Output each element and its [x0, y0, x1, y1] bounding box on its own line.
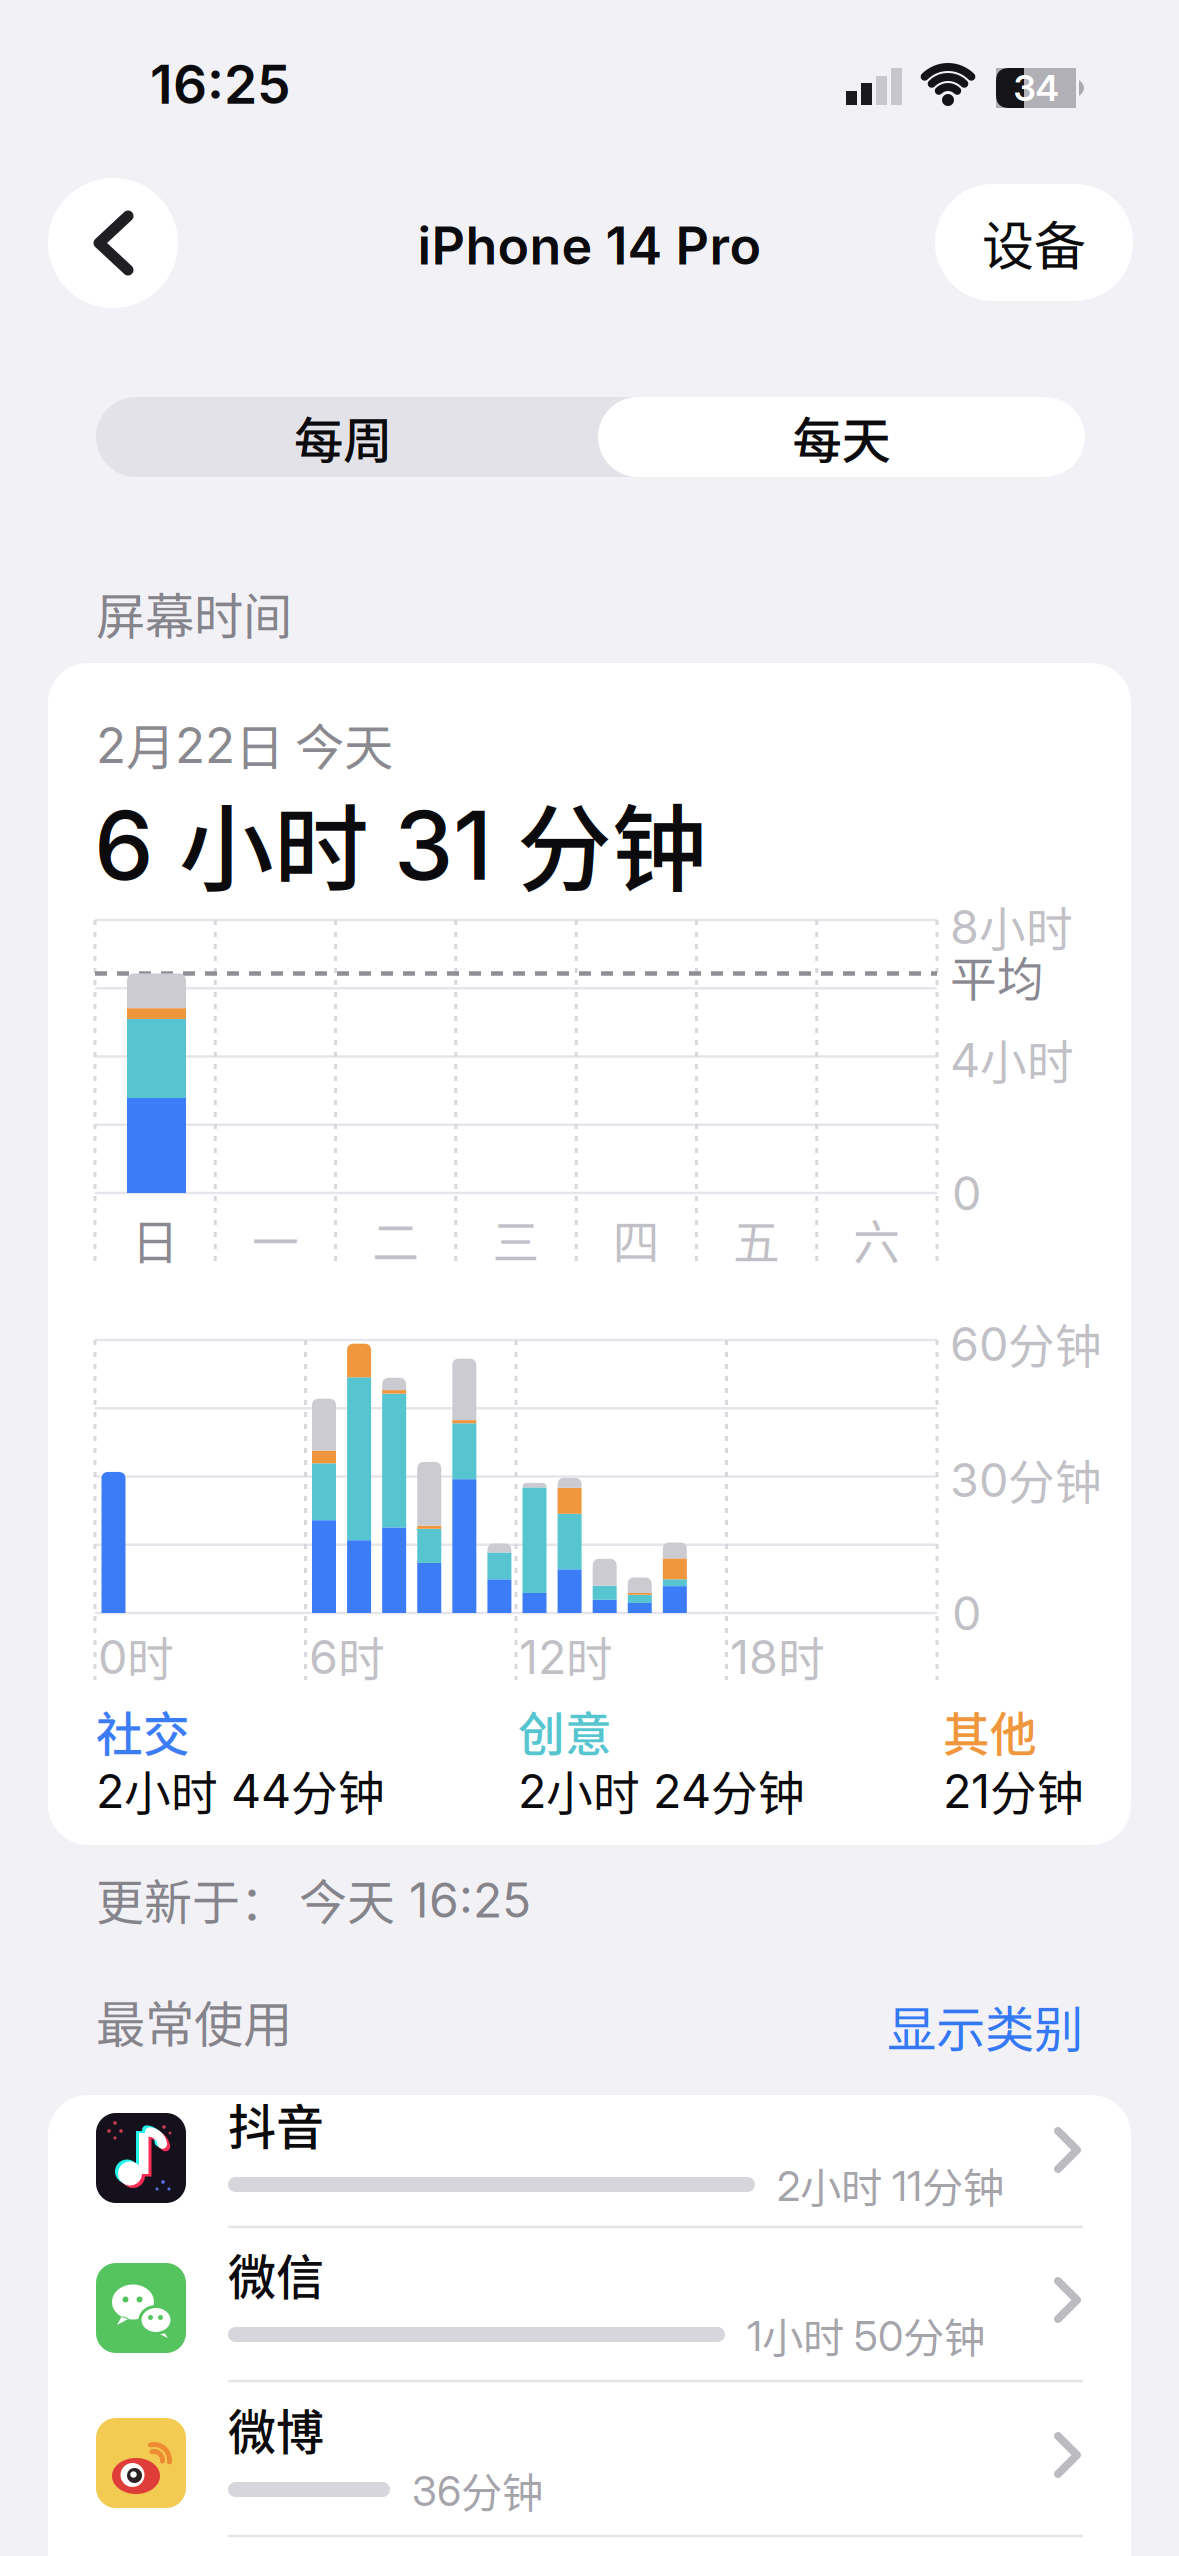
staticText: 60分钟	[950, 1309, 1102, 1377]
staticText: 微信	[228, 2239, 324, 2308]
staticText: 21分钟	[943, 1756, 1084, 1824]
staticText: 二	[372, 1205, 419, 1273]
staticText: 2小时 11分钟	[777, 2155, 1004, 2215]
staticText: 2小时 44分钟	[96, 1756, 385, 1824]
staticText: 8小时	[950, 892, 1073, 960]
staticText: 社交	[96, 1697, 190, 1765]
staticText: 34	[1013, 66, 1058, 110]
staticText: 设备	[982, 205, 1086, 280]
staticText: 0时	[98, 1622, 174, 1690]
staticText: 每周	[294, 401, 392, 473]
staticText: 屏幕时间	[96, 577, 292, 648]
staticText: 日	[132, 1205, 179, 1273]
staticText: 1小时 50分钟	[747, 2305, 985, 2365]
button[interactable]: 微博	[48, 2400, 1131, 2554]
button[interactable]: 微信	[48, 2245, 1131, 2399]
staticText: 4小时	[950, 1025, 1074, 1093]
staticText: 0	[952, 1165, 981, 1221]
staticText: 其他	[943, 1697, 1037, 1765]
staticText: iPhone 14 Pro	[417, 214, 761, 277]
staticText: 显示类别	[887, 1990, 1083, 2061]
button[interactable]: 显示类别	[887, 1990, 1083, 2061]
button[interactable]: 每周	[96, 397, 590, 477]
staticText: 六	[853, 1205, 900, 1273]
staticText: 12时	[519, 1622, 613, 1690]
staticText: 微博	[228, 2394, 324, 2463]
staticText: 五	[733, 1205, 780, 1273]
staticText: 最常使用	[96, 1985, 292, 2056]
staticText: 平均	[950, 942, 1044, 1010]
staticText: 6时	[309, 1622, 385, 1690]
staticText: 0	[952, 1585, 981, 1641]
staticText: 2月22日 今天	[96, 708, 393, 779]
button[interactable]: 每天	[598, 397, 1085, 477]
staticText: 6 小时 31 分钟	[94, 774, 707, 911]
staticText: 四	[613, 1205, 660, 1273]
button[interactable]: 抖音	[48, 2095, 1131, 2249]
staticText: 16:25	[150, 52, 291, 116]
staticText: 更新于： 今天 16:25	[96, 1864, 531, 1933]
staticText: 抖音	[228, 2089, 324, 2158]
staticText: 每天	[792, 401, 890, 473]
staticText: 18时	[730, 1622, 825, 1690]
staticText: 创意	[518, 1697, 612, 1765]
button[interactable]: 设备	[935, 184, 1133, 301]
staticText: 一	[252, 1205, 299, 1273]
staticText: 三	[492, 1205, 539, 1273]
staticText: 30分钟	[950, 1445, 1102, 1513]
staticText: 2小时 24分钟	[518, 1756, 805, 1824]
staticText: 36分钟	[412, 2460, 543, 2520]
button[interactable]: Back	[48, 178, 178, 308]
